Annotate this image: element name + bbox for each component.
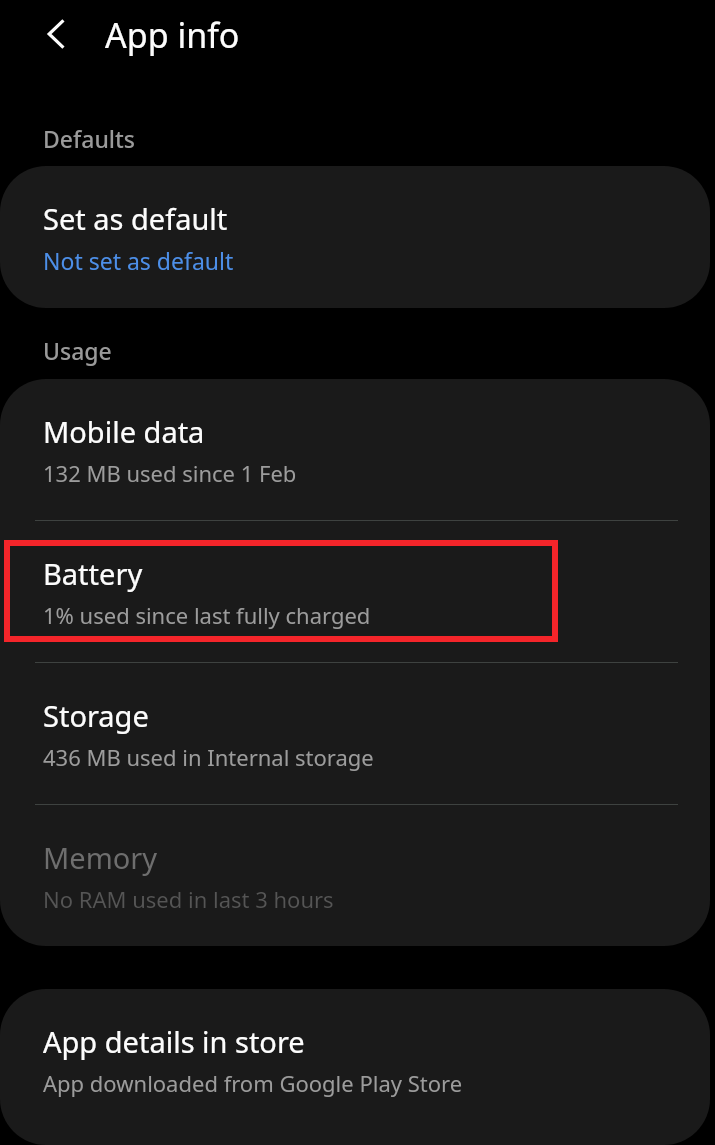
button[interactable]: Memory <box>0 805 710 946</box>
staticText: Defaults <box>43 123 136 154</box>
staticText: No RAM used in last 3 hours <box>43 884 334 914</box>
staticText: 1% used since last fully charged <box>43 600 371 630</box>
staticText: App downloaded from Google Play Store <box>43 1068 463 1098</box>
staticText: Not set as default <box>43 245 234 276</box>
button[interactable]: Battery <box>0 521 710 662</box>
staticText: App details in store <box>43 1022 305 1061</box>
staticText: 436 MB used in Internal storage <box>43 742 374 772</box>
staticText: Memory <box>43 838 158 877</box>
button[interactable]: Set as default <box>0 166 710 308</box>
button[interactable]: Back <box>28 4 88 64</box>
staticText: Usage <box>43 335 112 366</box>
button[interactable]: Mobile data <box>0 379 710 520</box>
staticText: Set as default <box>43 199 228 238</box>
staticText: Battery <box>43 554 143 593</box>
button[interactable]: App details in store <box>0 989 710 1130</box>
staticText: App info <box>105 12 240 58</box>
staticText: Mobile data <box>43 412 205 451</box>
staticText: 132 MB used since 1 Feb <box>43 458 297 488</box>
button[interactable]: Storage <box>0 663 710 804</box>
staticText: Storage <box>43 696 149 735</box>
